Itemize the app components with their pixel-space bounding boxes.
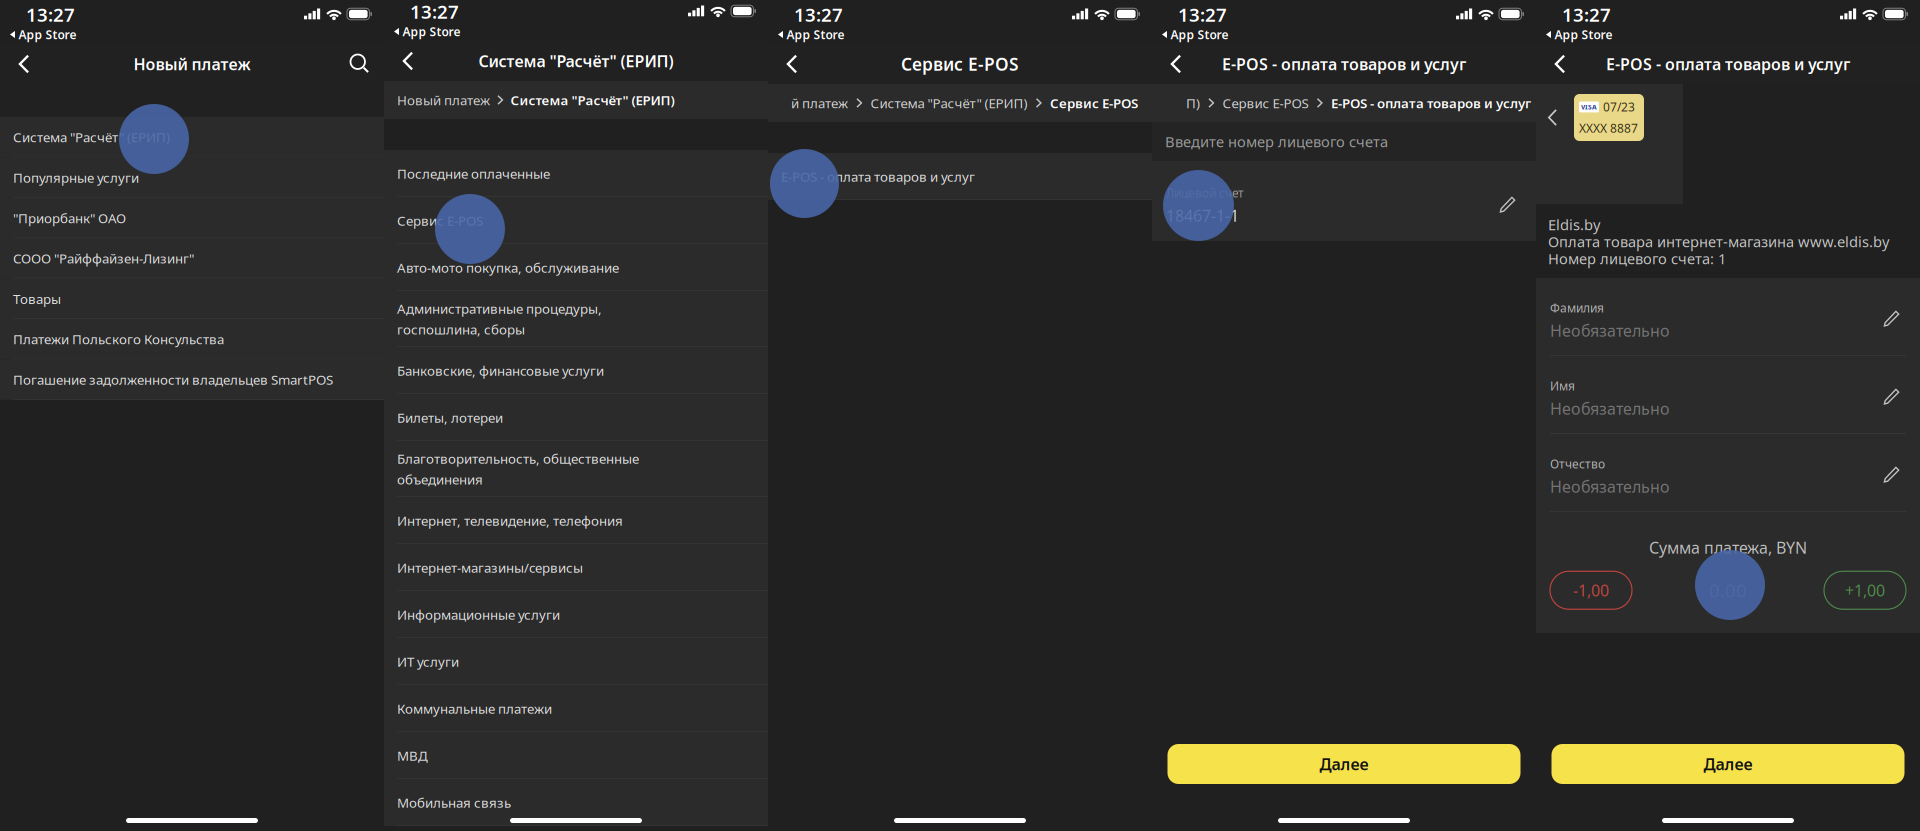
button[interactable]: Система "Расчёт" (ЕРИП) — [510, 91, 674, 109]
button[interactable]: Back — [1536, 44, 1584, 84]
staticText: 07/23 — [1603, 99, 1635, 115]
button[interactable]: Платежи Польского Консульства — [0, 319, 384, 359]
button[interactable]: Интернет-магазины/сервисы — [384, 544, 768, 591]
button[interactable]: Сервис E-POS — [384, 197, 768, 244]
staticText: Номер лицевого счета: 1 — [1548, 249, 1726, 268]
staticText: XXXX 8887 — [1579, 120, 1638, 136]
staticText: Новый платеж — [133, 53, 250, 75]
staticText: Сервис E-POS — [901, 52, 1019, 75]
staticText: Мобильная связь — [397, 794, 511, 811]
button[interactable]: Далее — [1167, 744, 1520, 784]
button[interactable]: Благотворительность, общественные — [384, 441, 768, 497]
staticText: Интернет-магазины/сервисы — [397, 559, 583, 576]
staticText: 18467-1-1 — [1166, 205, 1239, 226]
staticText: Сумма платежа, BYN — [1649, 537, 1807, 558]
button[interactable]: Система "Расчёт" (ЕРИП) — [870, 94, 1027, 112]
staticText: Билеты, лотереи — [397, 409, 503, 426]
button[interactable]: Лицевой счет — [1152, 161, 1536, 241]
button[interactable]: Интернет, телевидение, телефония — [384, 497, 768, 544]
button[interactable]: Back — [384, 41, 432, 81]
button[interactable]: П) — [1186, 94, 1200, 112]
staticText: 13:27 — [26, 2, 75, 27]
staticText: Далее — [1319, 753, 1368, 775]
staticText: Система "Расчёт" (ЕРИП) — [478, 50, 673, 72]
staticText: Введите номер лицевого счета — [1165, 132, 1388, 151]
staticText: Сервис E-POS — [397, 212, 483, 229]
staticText: Информационные услуги — [397, 606, 560, 623]
button[interactable]: Информационные услуги — [384, 591, 768, 638]
button[interactable]: Популярные услуги — [0, 157, 384, 198]
button[interactable]: Система "Расчёт" (ЕРИП) — [0, 117, 384, 157]
button[interactable]: Back — [1152, 44, 1200, 84]
staticText: 13:27 — [410, 0, 459, 24]
button[interactable]: Последние оплаченные — [384, 150, 768, 197]
staticText: Новый платеж — [397, 91, 490, 109]
staticText: Интернет, телевидение, телефония — [397, 512, 623, 529]
staticText: Административные процедуры, — [397, 300, 602, 317]
staticText: Сервис E-POS — [1222, 94, 1308, 112]
button[interactable]: Товары — [0, 279, 384, 319]
staticText: App Store — [18, 26, 76, 42]
button[interactable]: E-POS - оплата товаров и услуг — [768, 153, 1152, 200]
button[interactable]: СООО "Райффайзен-Лизинг" — [0, 238, 384, 279]
staticText: 13:27 — [1562, 2, 1611, 27]
staticText: E-POS - оплата товаров и услуг — [1331, 94, 1531, 112]
staticText: Имя — [1550, 378, 1575, 394]
staticText: СООО "Райффайзен-Лизинг" — [13, 249, 194, 267]
staticText: Система "Расчёт" (ЕРИП) — [870, 94, 1027, 112]
button[interactable]: Коммунальные платежи — [384, 685, 768, 732]
staticText: Eldis.by — [1548, 215, 1600, 234]
staticText: Оплата товара интернет-магазина www.eldi… — [1548, 232, 1889, 251]
button[interactable]: "Приорбанк" ОАО — [0, 198, 384, 238]
staticText: Система "Расчёт" (ЕРИП) — [510, 91, 674, 109]
button[interactable]: Билеты, лотереи — [384, 394, 768, 441]
staticText: МВД — [397, 747, 428, 764]
staticText: App Store — [1170, 26, 1228, 42]
staticText: Фамилия — [1550, 300, 1604, 316]
staticText: Необязательно — [1550, 476, 1670, 497]
staticText: Далее — [1703, 753, 1752, 775]
button[interactable]: ИТ услуги — [384, 638, 768, 685]
button[interactable]: Авто-мото покупка, обслуживание — [384, 244, 768, 291]
button[interactable]: Административные процедуры, — [384, 291, 768, 347]
staticText: Сервис E-POS — [1050, 94, 1138, 112]
staticText: й платеж — [791, 94, 848, 112]
staticText: Банковские, финансовые услуги — [397, 362, 604, 379]
staticText: App Store — [402, 23, 460, 39]
button[interactable]: E-POS - оплата товаров и услуг — [1331, 94, 1531, 112]
staticText: "Приорбанк" ОАО — [13, 209, 126, 227]
staticText: E-POS - оплата товаров и услуг — [781, 168, 975, 185]
button[interactable]: Погашение задолженности владельцев Smart… — [0, 359, 384, 400]
staticText: Необязательно — [1550, 320, 1670, 341]
staticText: App Store — [1554, 26, 1612, 42]
button[interactable]: Фамилия — [1536, 278, 1920, 356]
button[interactable]: Back — [768, 44, 816, 84]
staticText: П) — [1186, 94, 1200, 112]
button[interactable]: Имя — [1536, 356, 1920, 434]
button[interactable]: -1,00 — [1550, 571, 1632, 609]
button[interactable]: Сервис E-POS — [1050, 94, 1138, 112]
staticText: Отчество — [1550, 456, 1605, 472]
button[interactable]: Мобильная связь — [384, 779, 768, 826]
button[interactable]: й платеж — [791, 94, 848, 112]
staticText: Товары — [13, 290, 61, 308]
button[interactable]: Сервис E-POS — [1222, 94, 1308, 112]
staticText: VISA — [1581, 102, 1597, 111]
staticText: Коммунальные платежи — [397, 700, 552, 717]
staticText: объединения — [397, 470, 483, 488]
staticText: -1,00 — [1573, 580, 1609, 601]
button[interactable]: Отчество — [1536, 434, 1920, 512]
button[interactable]: Search — [336, 44, 384, 84]
staticText: Благотворительность, общественные — [397, 450, 639, 467]
button[interactable]: Новый платеж — [397, 91, 490, 109]
staticText: Лицевой счет — [1166, 185, 1244, 201]
staticText: госпошлина, сборы — [397, 320, 525, 338]
button[interactable]: Банковские, финансовые услуги — [384, 347, 768, 394]
button[interactable]: Back — [0, 44, 48, 84]
staticText: +1,00 — [1845, 580, 1885, 601]
button[interactable]: МВД — [384, 732, 768, 779]
staticText: ИТ услуги — [397, 653, 459, 670]
button[interactable]: Далее — [1551, 744, 1904, 784]
button[interactable]: +1,00 — [1824, 571, 1906, 609]
